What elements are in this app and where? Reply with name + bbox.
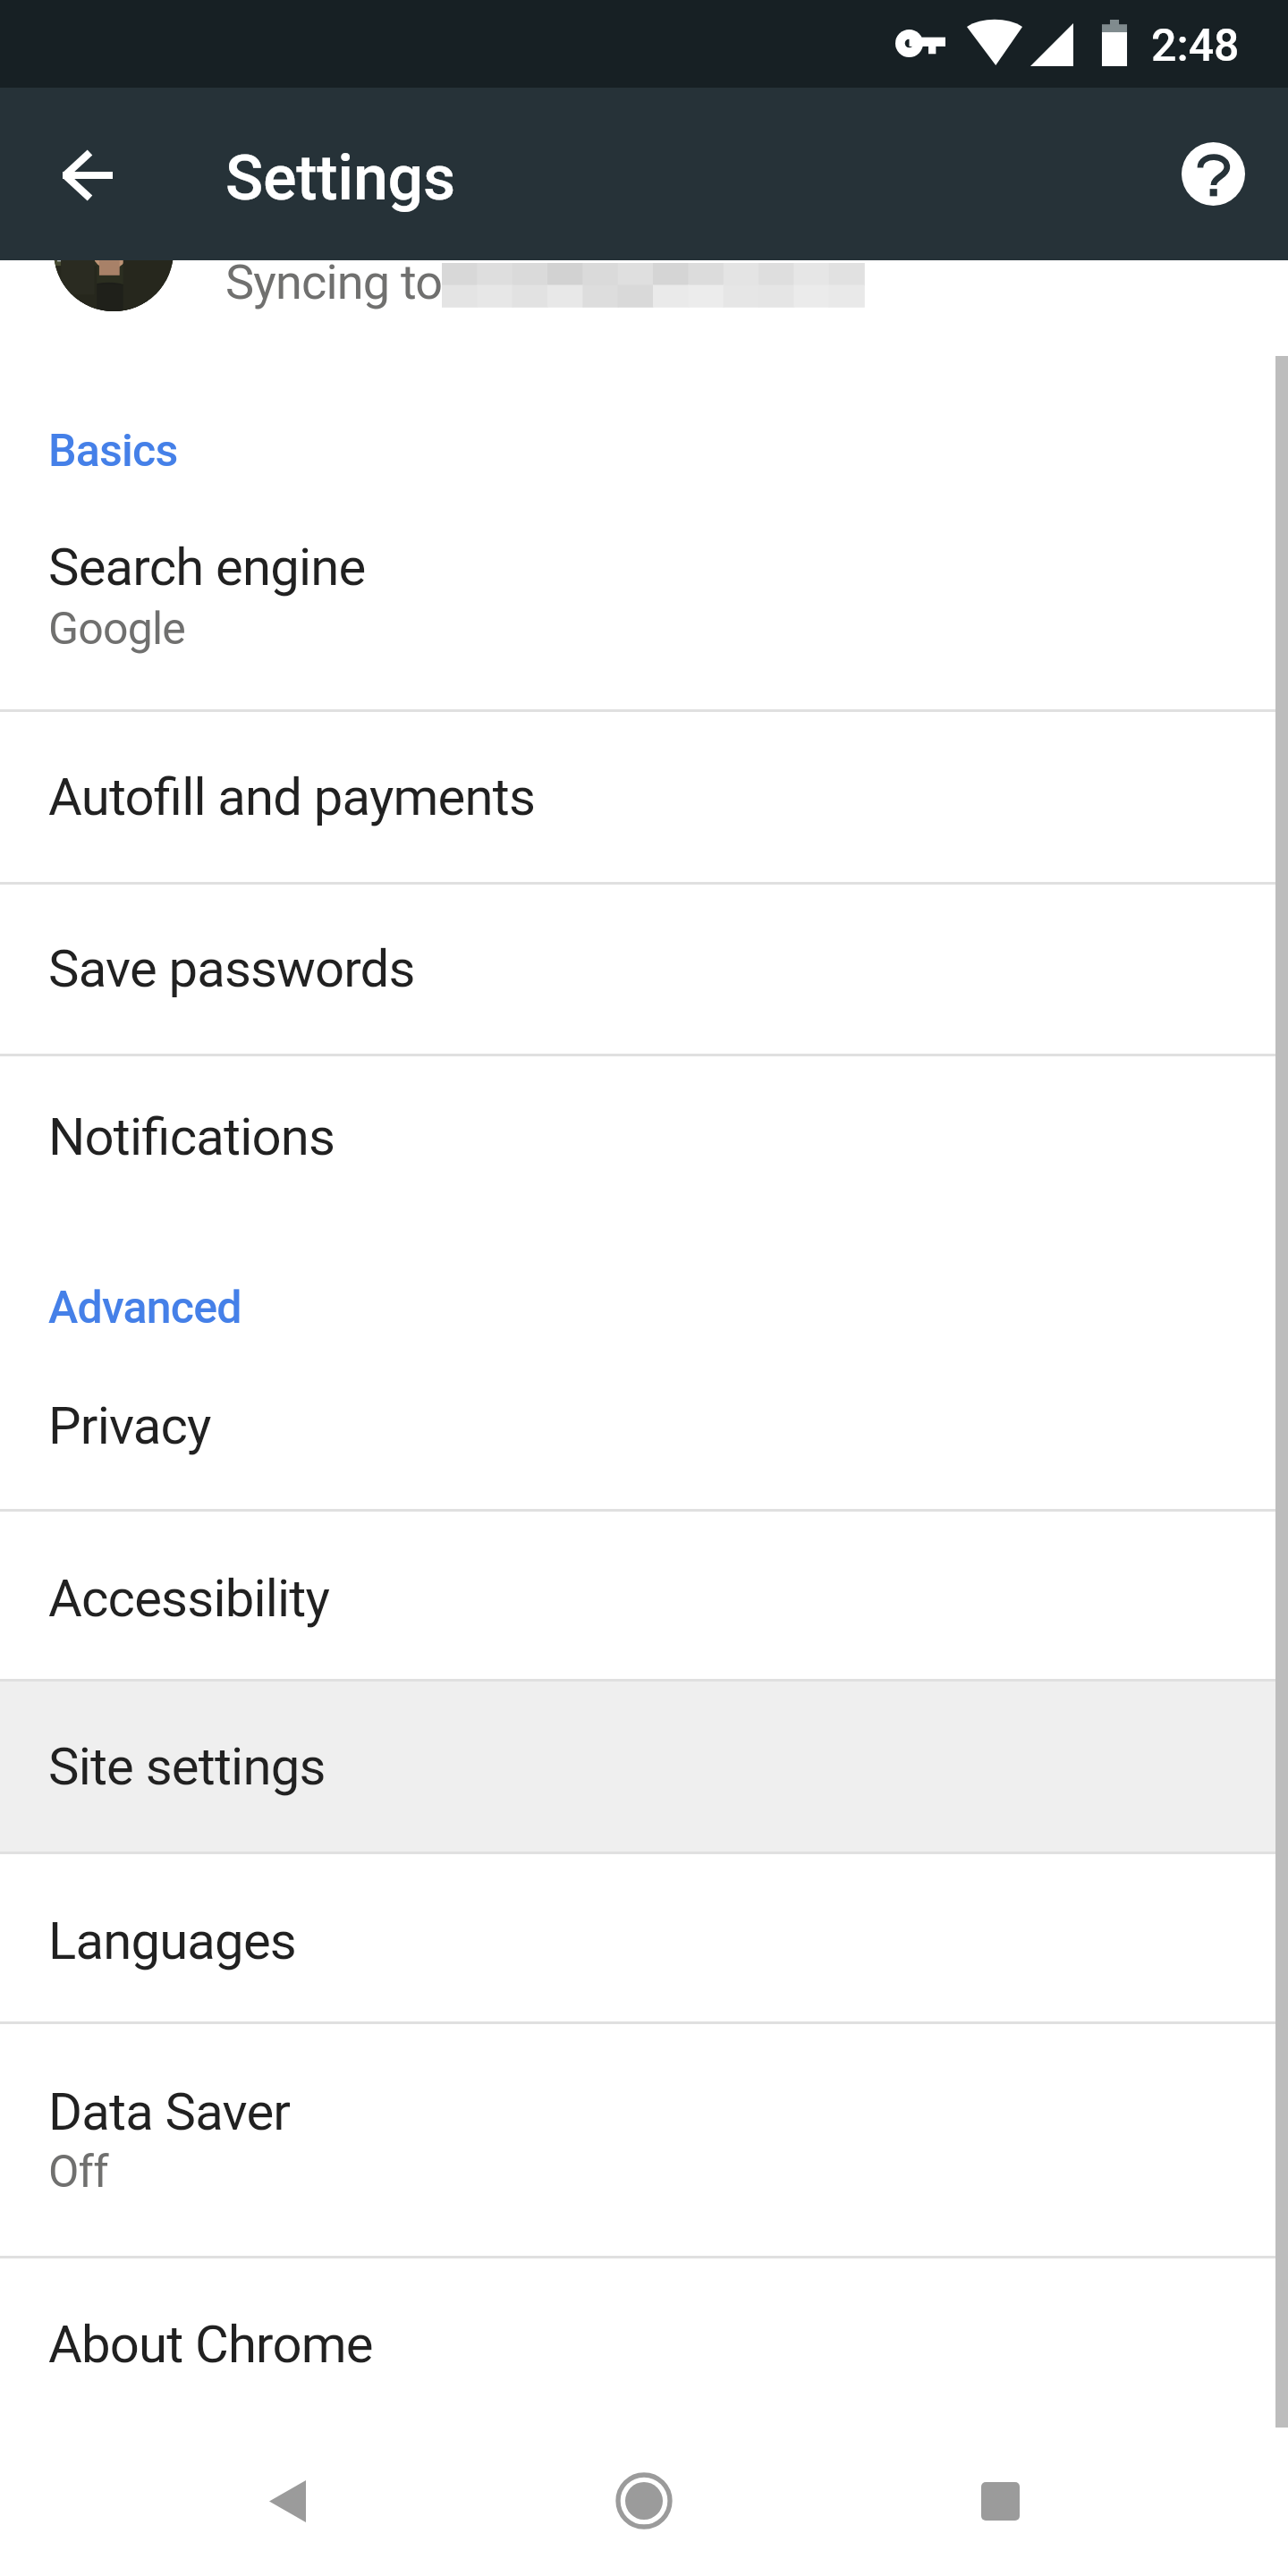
staticText: Autofill and payments — [48, 767, 536, 827]
button[interactable]: Search engine — [0, 478, 1288, 709]
staticText: Accessibility — [48, 1568, 330, 1629]
staticText: Off — [48, 2146, 108, 2199]
staticText: 2:48 — [1151, 20, 1240, 72]
staticText: About Chrome — [48, 2314, 373, 2375]
staticText: Advanced — [48, 1282, 241, 1335]
button[interactable]: Autofill and payments — [0, 712, 1288, 882]
button[interactable]: Notifications — [0, 1056, 1288, 1229]
button[interactable]: Help and feedback — [1152, 113, 1274, 234]
button[interactable]: Recent apps — [925, 2426, 1075, 2576]
button[interactable]: Navigate up — [27, 114, 148, 236]
button[interactable]: Home — [569, 2426, 719, 2576]
button[interactable]: Back — [212, 2426, 362, 2576]
staticText: Syncing to — [225, 254, 443, 310]
button[interactable]: Accessibility — [0, 1512, 1288, 1679]
staticText: Settings — [225, 141, 455, 215]
staticText: Privacy — [48, 1395, 211, 1456]
staticText: Languages — [48, 1911, 296, 1971]
staticText: Notifications — [48, 1106, 335, 1167]
button[interactable]: Save passwords — [0, 885, 1288, 1054]
staticText: Save passwords — [48, 938, 415, 999]
button[interactable]: Privacy — [0, 1342, 1288, 1509]
staticText: Site settings — [48, 1736, 326, 1797]
button[interactable]: Account — [54, 191, 174, 311]
staticText: Search engine — [48, 537, 366, 597]
button[interactable]: Languages — [0, 1854, 1288, 2021]
button[interactable]: About Chrome — [0, 2258, 1288, 2428]
staticText: Data Saver — [48, 2081, 291, 2142]
staticText: Basics — [48, 425, 178, 478]
button[interactable]: Data Saver — [0, 2024, 1288, 2256]
staticText: Google — [48, 603, 186, 656]
button[interactable]: Site settings — [0, 1682, 1288, 1851]
